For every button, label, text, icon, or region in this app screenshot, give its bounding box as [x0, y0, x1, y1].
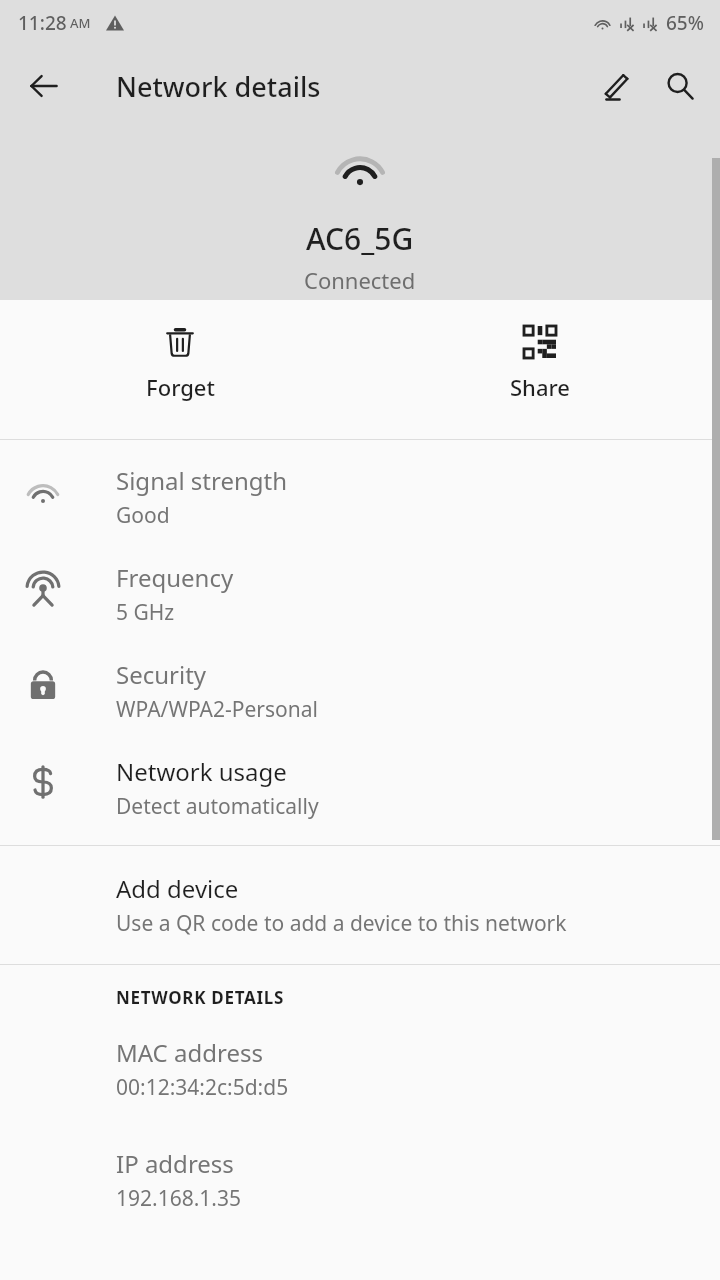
- button[interactable]: Network usage: [0, 730, 720, 827]
- button[interactable]: Frequency: [0, 536, 720, 633]
- staticText: Share: [510, 372, 570, 402]
- staticText: 65%: [666, 10, 704, 36]
- button[interactable]: MAC address: [0, 1009, 720, 1102]
- staticText: NETWORK DETAILS: [116, 986, 285, 1009]
- staticText: MAC address: [116, 1036, 263, 1069]
- button[interactable]: Back: [14, 56, 74, 116]
- staticText: 5 GHz: [116, 598, 175, 627]
- button[interactable]: Edit: [584, 54, 648, 118]
- staticText: Good: [116, 501, 170, 530]
- staticText: Add device: [116, 872, 239, 905]
- button[interactable]: Add device: [0, 846, 720, 964]
- staticText: 11:28: [18, 10, 67, 36]
- staticText: 00:12:34:2c:5d:d5: [116, 1073, 289, 1102]
- button[interactable]: Signal strength: [0, 440, 720, 536]
- staticText: 192.168.1.35: [116, 1184, 241, 1213]
- button[interactable]: Security: [0, 633, 720, 730]
- staticText: WPA/WPA2-Personal: [116, 695, 318, 724]
- staticText: AM: [70, 14, 91, 32]
- button[interactable]: Share: [360, 300, 720, 439]
- button[interactable]: IP address: [0, 1102, 720, 1213]
- button[interactable]: Search: [648, 54, 712, 118]
- staticText: Use a QR code to add a device to this ne…: [116, 909, 567, 938]
- staticText: Security: [116, 658, 207, 691]
- staticText: Signal strength: [116, 464, 288, 497]
- staticText: Detect automatically: [116, 792, 319, 821]
- staticText: AC6_5G: [306, 218, 414, 259]
- button[interactable]: Forget: [0, 300, 360, 439]
- staticText: IP address: [116, 1147, 234, 1180]
- staticText: Connected: [304, 265, 416, 295]
- staticText: Network details: [116, 68, 321, 105]
- staticText: Network usage: [116, 755, 287, 788]
- staticText: Frequency: [116, 561, 234, 594]
- staticText: Forget: [146, 372, 215, 402]
